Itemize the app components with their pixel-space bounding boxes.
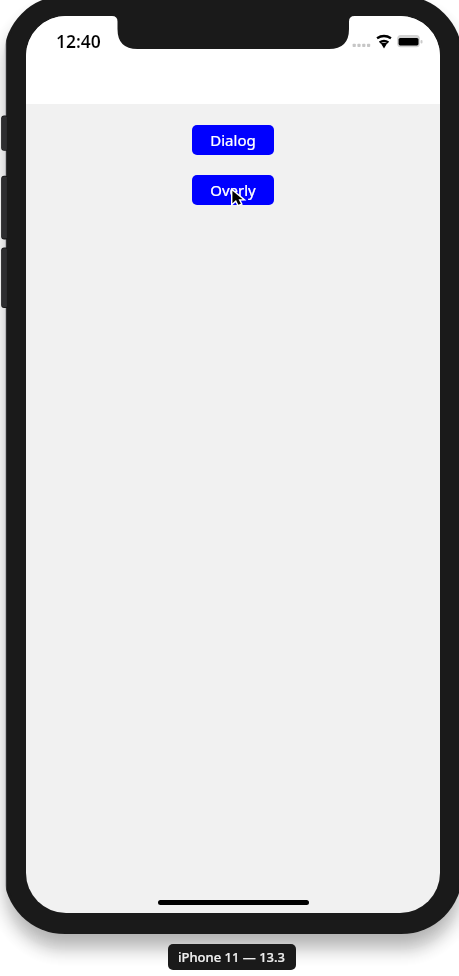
staticText: Overly bbox=[210, 180, 256, 200]
staticText: 12:40 bbox=[56, 29, 101, 53]
staticText: iPhone 11 — 13.3 bbox=[178, 948, 286, 966]
button[interactable]: iPhone 11 — 13.3 bbox=[168, 944, 296, 970]
button[interactable]: Dialog bbox=[192, 125, 274, 155]
button[interactable]: Overly bbox=[192, 175, 274, 205]
staticText: Dialog bbox=[210, 130, 256, 150]
